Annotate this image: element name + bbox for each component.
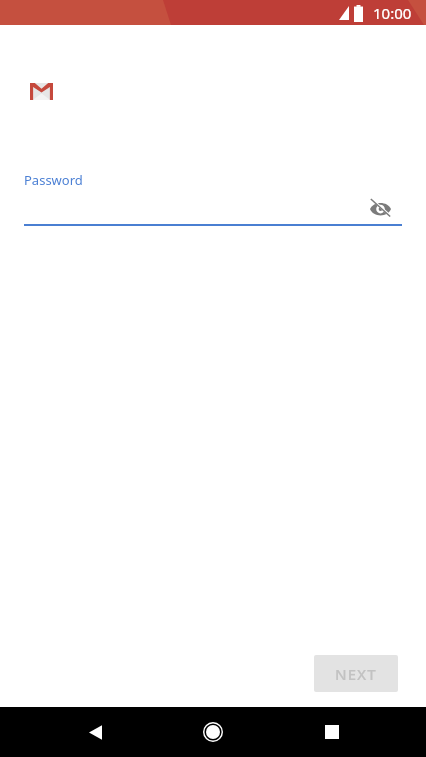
button[interactable]: Home: [189, 708, 237, 756]
button[interactable]: Password: [24, 165, 402, 226]
staticText: 10:00: [373, 3, 412, 23]
staticText: Password: [24, 171, 83, 189]
button[interactable]: Back: [71, 708, 119, 756]
button[interactable]: NEXT: [314, 655, 398, 692]
staticText: NEXT: [335, 664, 377, 684]
button[interactable]: Recents: [308, 708, 356, 756]
button[interactable]: Show password: [368, 196, 392, 220]
